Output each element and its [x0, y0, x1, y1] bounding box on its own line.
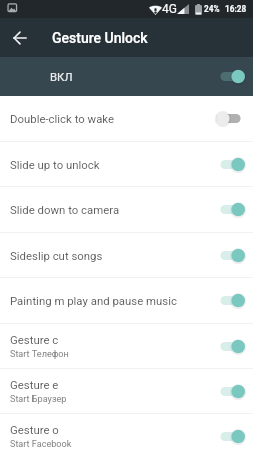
button[interactable]: Double-click to wake — [0, 96, 253, 142]
staticText: Sideslip cut songs — [10, 249, 103, 262]
staticText: 24% — [204, 4, 220, 14]
button[interactable]: Painting m play and pause music — [0, 278, 253, 324]
staticText: Gesture e — [10, 378, 59, 391]
staticText: 4G — [162, 2, 177, 16]
staticText: Start Браузер — [10, 394, 67, 405]
staticText: Gesture o — [10, 423, 59, 436]
button[interactable]: Gesture e — [0, 369, 253, 414]
staticText: Start Facebook — [10, 439, 72, 450]
staticText: Gesture c — [10, 333, 59, 346]
staticText: Slide down to camera — [10, 203, 120, 216]
button[interactable]: Slide down to camera — [0, 187, 253, 233]
button[interactable]: Sideslip cut songs — [0, 233, 253, 278]
button[interactable]: Slide up to unlock — [0, 142, 253, 187]
button[interactable]: ВКЛ — [0, 57, 253, 96]
staticText: Gesture Unlock — [52, 30, 148, 46]
staticText: Double-click to wake — [10, 112, 115, 125]
staticText: Start Телефон — [10, 349, 69, 360]
button[interactable]: Gesture o — [0, 414, 253, 450]
staticText: ВКЛ — [50, 70, 73, 83]
staticText: Painting m play and pause music — [10, 294, 177, 307]
button[interactable]: Gesture c — [0, 324, 253, 369]
staticText: 16:28 — [225, 4, 247, 14]
button[interactable]: Back — [0, 18, 39, 57]
staticText: Slide up to unlock — [10, 158, 100, 171]
